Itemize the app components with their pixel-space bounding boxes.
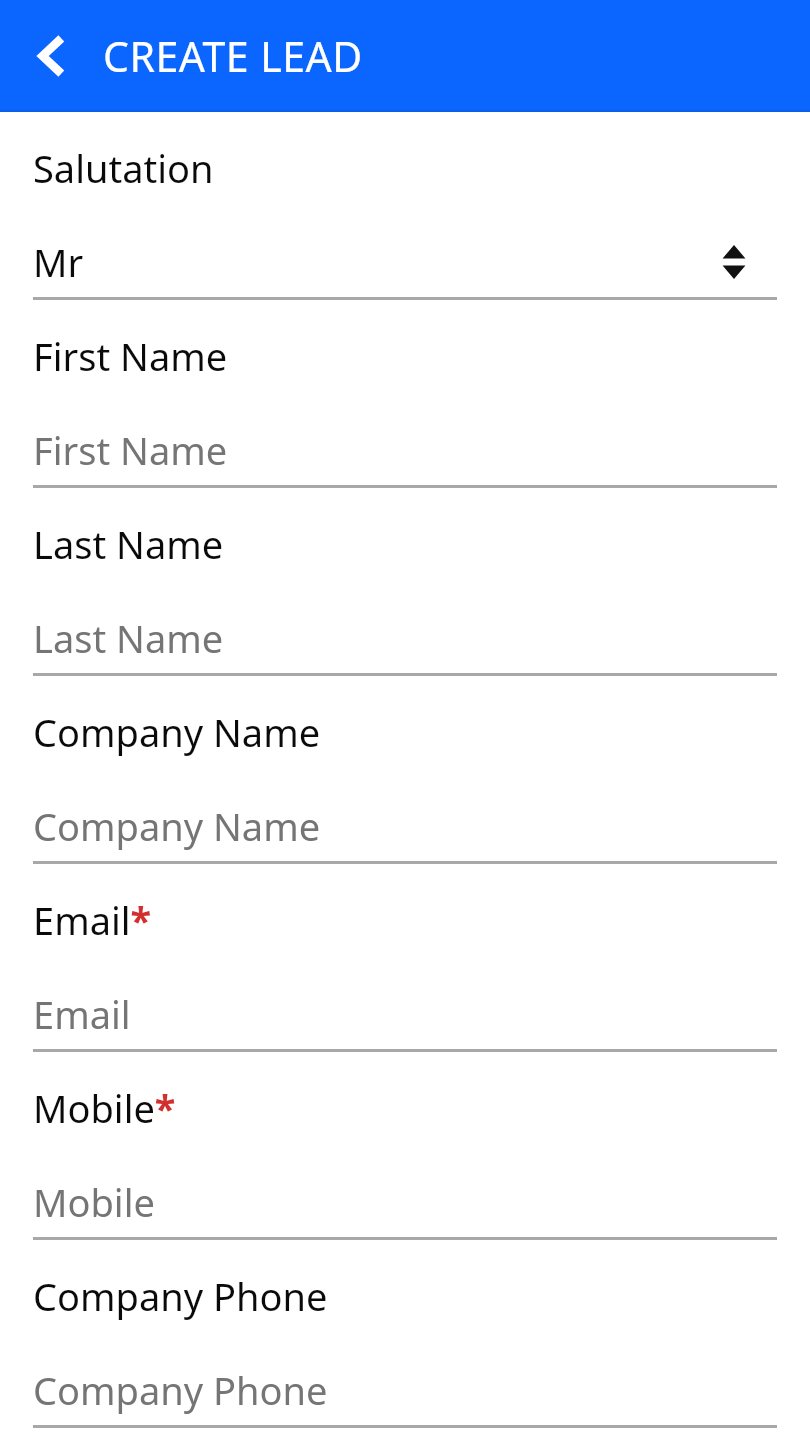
- staticText: Company Name: [33, 706, 321, 758]
- staticText: Mr: [33, 236, 84, 288]
- button[interactable]: Company Phone: [33, 1240, 777, 1428]
- button[interactable]: Mobile*: [33, 1052, 777, 1240]
- staticText: Salutation: [33, 142, 214, 194]
- button[interactable]: First Name: [33, 300, 777, 488]
- staticText: Mobile*: [33, 1082, 176, 1134]
- staticText: First Name: [33, 330, 228, 382]
- staticText: Company Phone: [33, 1364, 328, 1416]
- staticText: Company Phone: [33, 1270, 328, 1322]
- staticText: Email*: [33, 894, 152, 946]
- button[interactable]: Email*: [33, 864, 777, 1052]
- staticText: Company Name: [33, 800, 321, 852]
- staticText: First Name: [33, 424, 228, 476]
- staticText: CREATE LEAD: [103, 28, 363, 84]
- button[interactable]: Company Name: [33, 676, 777, 864]
- button[interactable]: Last Name: [33, 488, 777, 676]
- staticText: Email: [33, 988, 131, 1040]
- button[interactable]: Back: [27, 30, 79, 82]
- staticText: Last Name: [33, 518, 224, 570]
- staticText: Mobile: [33, 1176, 155, 1228]
- button[interactable]: Salutation: [33, 112, 777, 300]
- staticText: Last Name: [33, 612, 224, 664]
